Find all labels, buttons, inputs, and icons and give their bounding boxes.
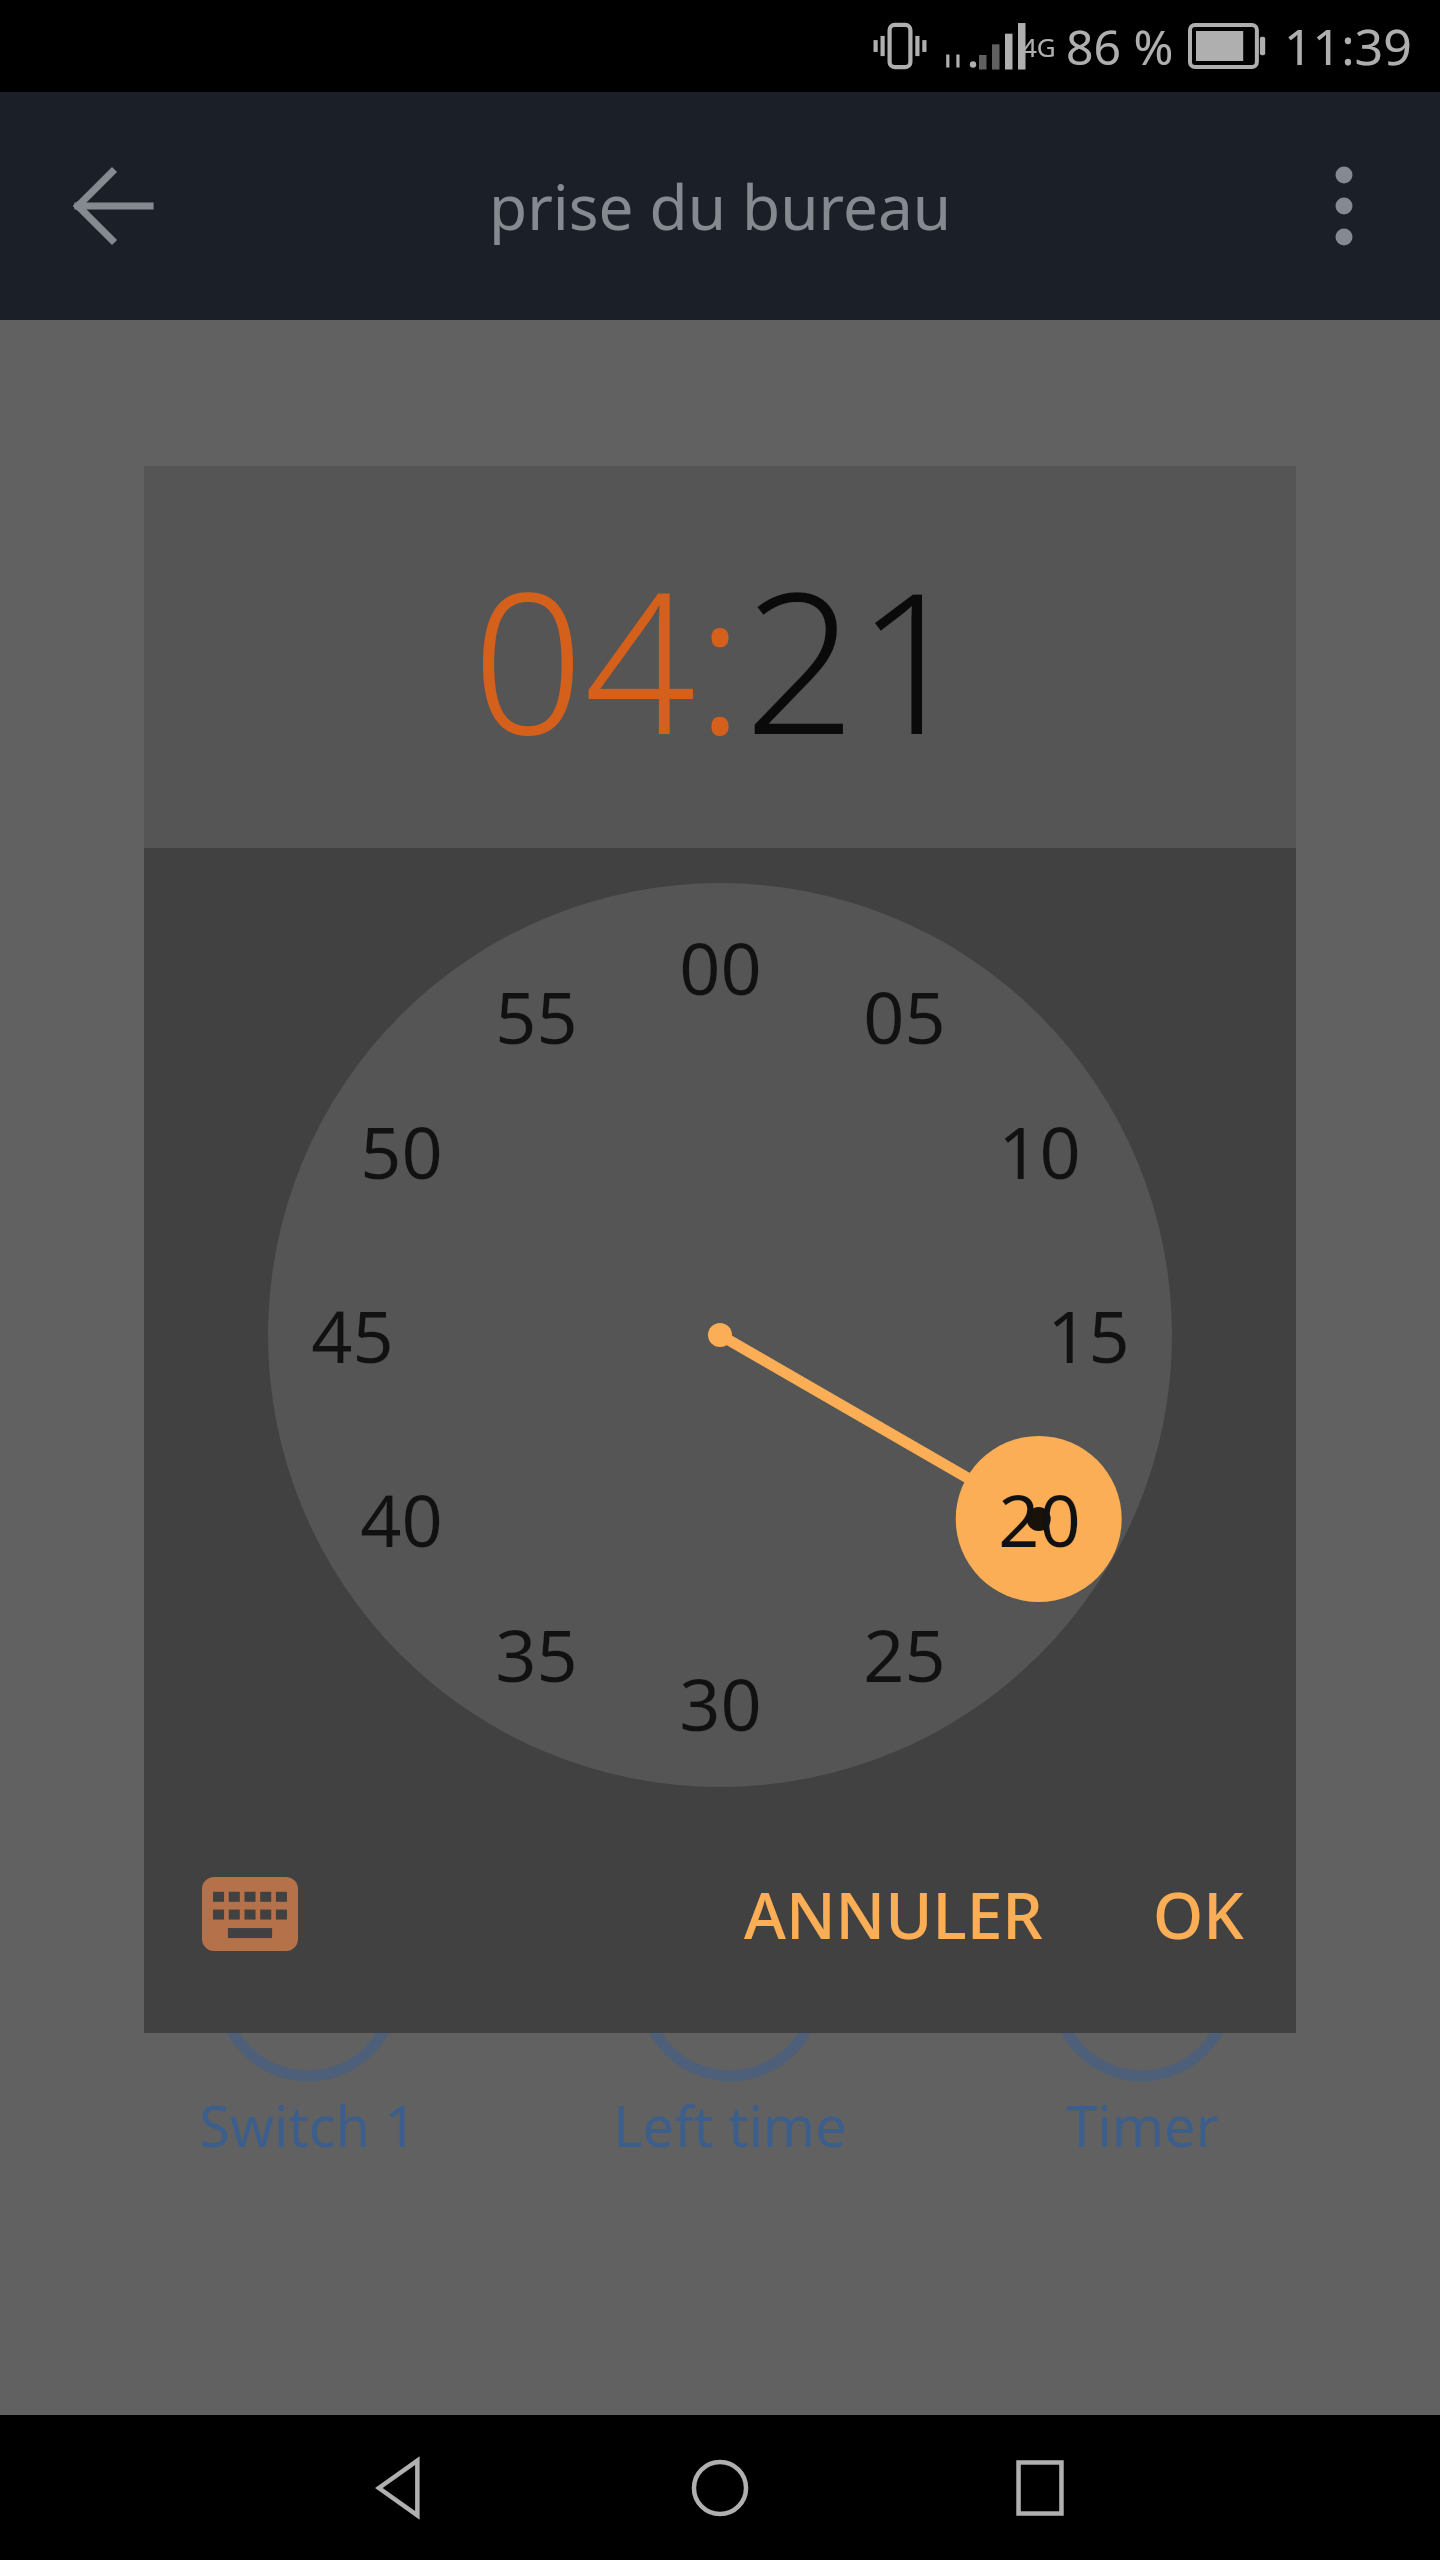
button[interactable]: More options xyxy=(1284,146,1404,266)
staticText: 45 xyxy=(311,1286,394,1384)
button[interactable]: 00 xyxy=(645,892,795,1042)
button[interactable]: Left time xyxy=(560,2080,900,2170)
staticText: 50 xyxy=(360,1102,443,1200)
button[interactable]: 35 xyxy=(461,1579,611,1729)
button[interactable]: Back xyxy=(335,2423,465,2553)
staticText: 35 xyxy=(495,1605,578,1703)
staticText: 4G xyxy=(1022,29,1056,64)
button[interactable]: Minute picker xyxy=(144,880,1296,1790)
staticText: 86 % xyxy=(1066,14,1174,79)
staticText: 25 xyxy=(863,1605,946,1703)
staticText: 21 xyxy=(744,524,968,791)
button[interactable]: 04 xyxy=(472,524,696,791)
button[interactable]: 15 xyxy=(1013,1260,1163,1410)
button[interactable]: 40 xyxy=(326,1444,476,1594)
button[interactable]: Switch 1 xyxy=(138,2080,478,2170)
staticText: Switch 1 xyxy=(199,2087,417,2163)
button[interactable]: 25 xyxy=(829,1579,979,1729)
button[interactable]: 10 xyxy=(964,1076,1114,1226)
staticText: 00 xyxy=(679,918,762,1016)
staticText: ANNULER xyxy=(744,1871,1043,1958)
button[interactable]: OK xyxy=(1127,1845,1270,1984)
staticText: Timer xyxy=(1066,2087,1219,2163)
staticText: 11:39 xyxy=(1284,12,1412,80)
staticText: 20 xyxy=(998,1470,1081,1568)
staticText: 10 xyxy=(998,1102,1081,1200)
button[interactable]: 30 xyxy=(645,1628,795,1778)
button[interactable]: 21 xyxy=(744,524,968,791)
staticText: prise du bureau xyxy=(489,164,951,248)
button[interactable]: ANNULER xyxy=(718,1845,1069,1984)
button[interactable]: Recent apps xyxy=(975,2423,1105,2553)
button[interactable]: Home xyxy=(655,2423,785,2553)
button[interactable]: Back xyxy=(48,140,180,272)
button[interactable]: Switch to text input xyxy=(186,1850,314,1978)
staticText: 15 xyxy=(1047,1286,1130,1384)
staticText: OK xyxy=(1153,1871,1244,1958)
staticText: Left time xyxy=(613,2087,847,2163)
staticText: 55 xyxy=(495,967,578,1065)
button[interactable]: Timer xyxy=(972,2080,1312,2170)
staticText: 05 xyxy=(863,967,946,1065)
button[interactable]: 50 xyxy=(326,1076,476,1226)
button[interactable]: 45 xyxy=(277,1260,427,1410)
staticText: : xyxy=(696,524,744,791)
button[interactable]: 20 xyxy=(964,1444,1114,1594)
button[interactable]: 55 xyxy=(461,941,611,1091)
staticText: 40 xyxy=(360,1470,443,1568)
staticText: 04 xyxy=(472,524,696,791)
button[interactable]: 05 xyxy=(829,941,979,1091)
staticText: 30 xyxy=(679,1654,762,1752)
